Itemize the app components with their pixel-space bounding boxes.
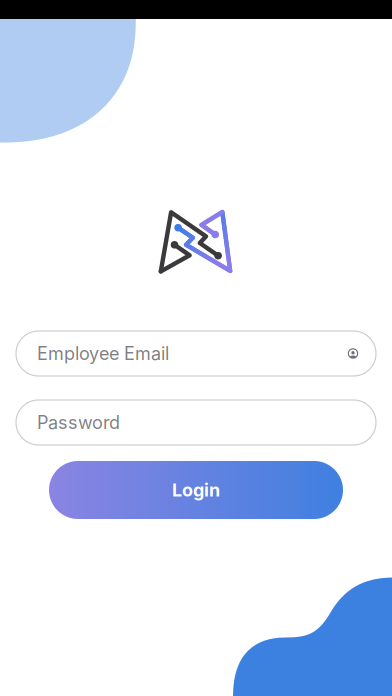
staticText: Login [172,479,220,501]
staticText: Password [37,412,120,433]
button[interactable]: Employee Email [16,331,376,376]
button[interactable]: Login [49,461,343,519]
button[interactable]: Password [16,400,376,445]
staticText: Employee Email [37,343,169,364]
